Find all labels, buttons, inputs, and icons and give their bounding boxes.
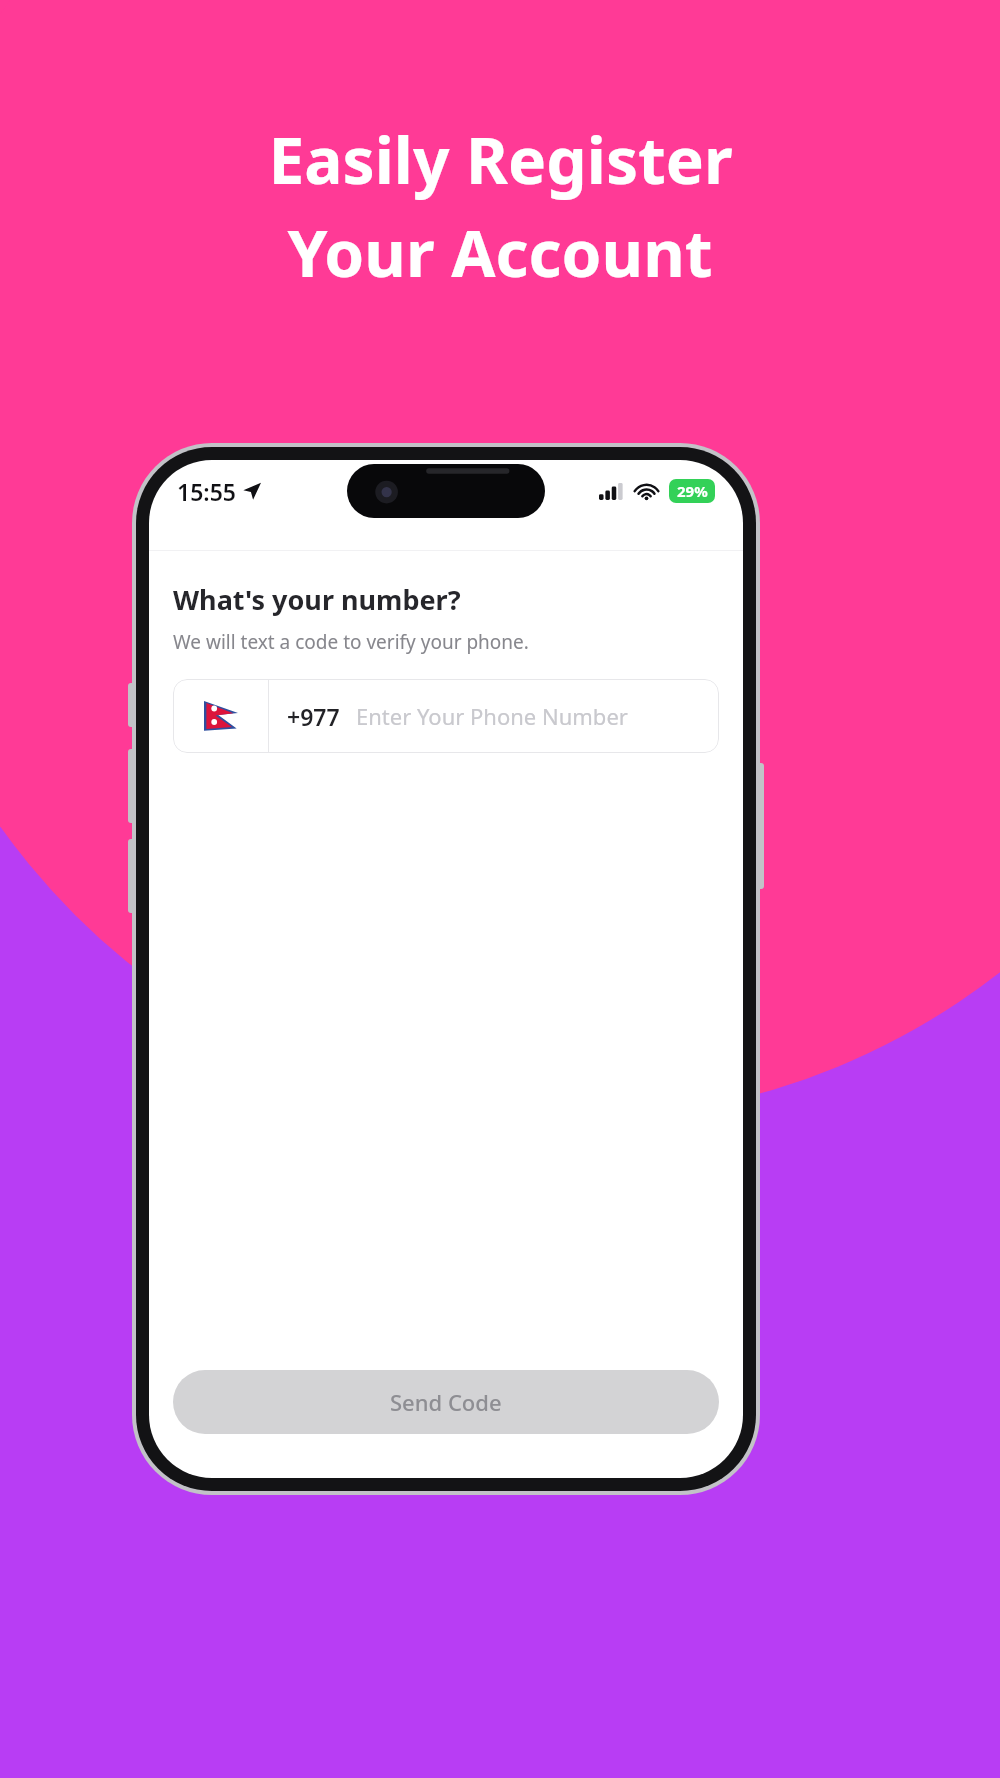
staticText: We will text a code to verify your phone… (173, 629, 529, 655)
staticText: What's your number? (173, 581, 461, 618)
other: Location active (243, 482, 261, 500)
staticText: Send Code (390, 1387, 502, 1417)
other: Wi-Fi (634, 482, 659, 500)
button[interactable]: Send Code (173, 1370, 719, 1434)
staticText: 15:55 (177, 476, 236, 507)
staticText: Enter Your Phone Number (356, 701, 628, 731)
staticText: Your Account (287, 209, 713, 296)
button[interactable]: +977 (173, 679, 719, 753)
staticText: 29% (677, 481, 708, 501)
staticText: +977 (287, 701, 340, 732)
other: Cellular signal (599, 483, 624, 500)
staticText: Easily Register (268, 116, 733, 203)
